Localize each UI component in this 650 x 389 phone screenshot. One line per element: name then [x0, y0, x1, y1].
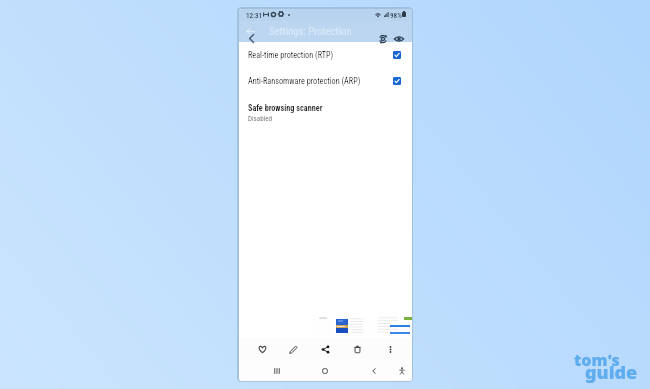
button[interactable]: Recent apps	[269, 363, 285, 379]
button[interactable]: Anti-Ransomware protection (ARP)	[239, 72, 412, 90]
button[interactable]: Safe browsing scanner	[239, 100, 412, 127]
button[interactable]: Share	[316, 340, 334, 358]
button[interactable]: Back	[244, 25, 256, 37]
staticText: tom's	[574, 349, 620, 371]
button[interactable]: Rotate screen	[376, 32, 390, 46]
staticText: 12:31	[246, 11, 263, 19]
staticText: Disabled	[248, 115, 272, 123]
button[interactable]: Delete	[348, 340, 366, 358]
staticText: Settings: Protection	[269, 25, 352, 37]
staticText: Safe browsing scanner	[248, 103, 323, 113]
staticText: guide	[585, 360, 638, 385]
button[interactable]: Back	[366, 363, 382, 379]
button[interactable]: Real-time protection (RTP)	[239, 46, 412, 64]
button[interactable]: More options	[381, 340, 399, 358]
button[interactable]: Accessibility	[394, 363, 410, 379]
button[interactable]: Navigate up	[244, 31, 259, 46]
button[interactable]: Edit	[284, 340, 302, 358]
button[interactable]: Home	[317, 363, 333, 379]
staticText: Real-time protection (RTP)	[248, 50, 334, 60]
button[interactable]: Favorite	[253, 340, 271, 358]
button[interactable]: Show preview	[392, 32, 406, 46]
staticText: Anti-Ransomware protection (ARP)	[248, 76, 361, 86]
staticText: 98%	[390, 11, 402, 19]
